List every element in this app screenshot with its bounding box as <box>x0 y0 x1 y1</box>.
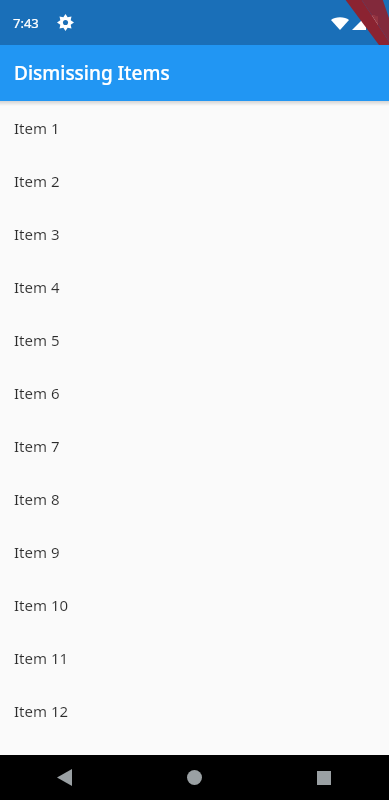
button[interactable] <box>0 525 389 578</box>
button[interactable] <box>0 472 389 525</box>
button[interactable] <box>0 154 389 207</box>
button[interactable] <box>0 684 389 737</box>
button[interactable] <box>0 419 389 472</box>
button[interactable] <box>0 631 389 684</box>
button[interactable]: Home <box>129 755 259 800</box>
button[interactable] <box>0 313 389 366</box>
button[interactable]: Settings <box>57 14 74 31</box>
button[interactable] <box>0 207 389 260</box>
button[interactable] <box>0 101 389 154</box>
button[interactable] <box>0 578 389 631</box>
button[interactable] <box>0 366 389 419</box>
button[interactable] <box>0 260 389 313</box>
button[interactable]: Back <box>0 755 129 800</box>
button[interactable]: Recent apps <box>259 755 389 800</box>
